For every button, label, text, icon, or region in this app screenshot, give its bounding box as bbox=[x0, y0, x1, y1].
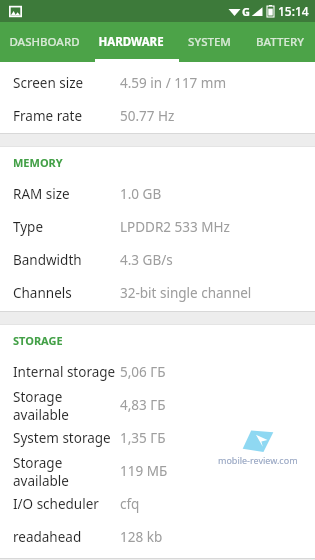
staticText: 128 kb bbox=[120, 528, 163, 546]
staticText: mobile-review.com bbox=[218, 454, 298, 466]
staticText: 32-bit single channel bbox=[120, 284, 252, 302]
button[interactable]: I/O scheduler bbox=[0, 487, 315, 520]
staticText: 4.3 GB/s bbox=[120, 251, 173, 269]
staticText: BATTERY bbox=[256, 34, 304, 50]
button[interactable]: Frame rate bbox=[0, 99, 315, 132]
staticText: 1,35 ГБ bbox=[120, 429, 166, 447]
staticText: LPDDR2 533 MHz bbox=[120, 218, 230, 236]
staticText: Frame rate bbox=[13, 107, 82, 125]
staticText: Channels bbox=[13, 284, 72, 302]
staticText: cfq bbox=[120, 495, 140, 513]
staticText: 5,06 ГБ bbox=[120, 363, 166, 381]
staticText: Screen size bbox=[13, 74, 84, 92]
staticText: G bbox=[242, 4, 250, 19]
button[interactable]: readahead bbox=[0, 520, 315, 553]
button[interactable]: HARDWARE bbox=[88, 22, 174, 62]
staticText: 4.59 in / 117 mm bbox=[120, 74, 227, 92]
staticText: I/O scheduler bbox=[13, 495, 99, 513]
staticText: readahead bbox=[13, 528, 82, 546]
staticText: MEMORY bbox=[13, 155, 63, 170]
button[interactable]: Internal storage bbox=[0, 355, 315, 388]
button[interactable]: Channels bbox=[0, 276, 315, 309]
button[interactable]: BATTERY bbox=[244, 22, 315, 62]
other: Screenshot saved bbox=[9, 5, 22, 18]
staticText: System storage bbox=[13, 429, 111, 447]
staticText: SYSTEM bbox=[188, 34, 231, 50]
button[interactable]: Screen size bbox=[0, 66, 315, 99]
staticText: Bandwidth bbox=[13, 251, 82, 269]
button[interactable]: System storage bbox=[0, 421, 315, 454]
staticText: 1.0 GB bbox=[120, 185, 162, 203]
button[interactable]: Storage available bbox=[0, 388, 315, 421]
staticText: Storage available bbox=[13, 454, 120, 487]
button[interactable]: Type bbox=[0, 210, 315, 243]
staticText: HARDWARE bbox=[98, 34, 164, 50]
staticText: 119 МБ bbox=[120, 462, 168, 480]
button[interactable]: Bandwidth bbox=[0, 243, 315, 276]
staticText: Storage available bbox=[13, 388, 120, 421]
button[interactable]: SYSTEM bbox=[174, 22, 244, 62]
button[interactable]: Storage available bbox=[0, 454, 315, 487]
staticText: RAM size bbox=[13, 185, 70, 203]
staticText: Internal storage bbox=[13, 363, 116, 381]
staticText: STORAGE bbox=[13, 333, 63, 348]
staticText: 4,83 ГБ bbox=[120, 396, 166, 414]
staticText: 15:14 bbox=[278, 3, 309, 19]
staticText: DASHBOARD bbox=[9, 34, 80, 50]
button[interactable]: RAM size bbox=[0, 177, 315, 210]
staticText: Type bbox=[13, 218, 44, 236]
staticText: 50.77 Hz bbox=[120, 107, 175, 125]
button[interactable]: DASHBOARD bbox=[0, 22, 88, 62]
